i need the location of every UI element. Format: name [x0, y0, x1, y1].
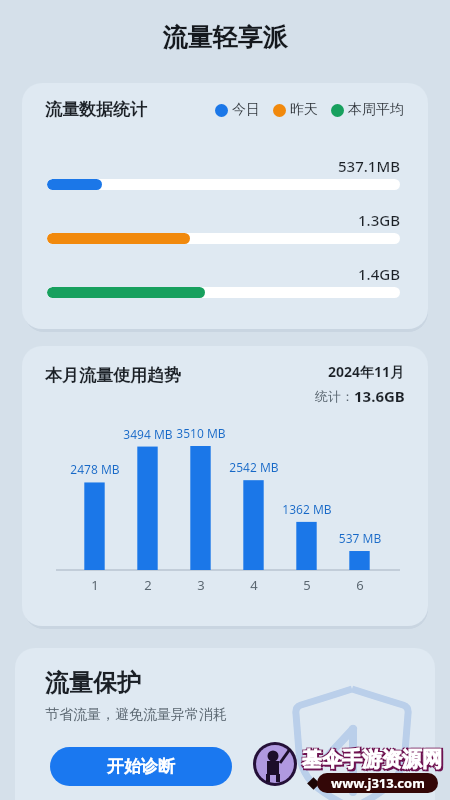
staticText: 4 [234, 576, 274, 594]
staticText: 基伞手游资源网 [304, 749, 444, 774]
staticText: 基伞手游资源网 [302, 747, 442, 772]
staticText: 2 [128, 576, 168, 594]
staticText: 537 MB [325, 530, 395, 546]
staticText: 2542 MB [219, 459, 289, 475]
staticText: 流量数据统计 [45, 99, 147, 120]
staticText: 开始诊断 [107, 756, 175, 777]
staticText: 5 [287, 576, 327, 594]
staticText: 1362 MB [272, 501, 342, 517]
staticText: 基伞手游资源网 [304, 749, 444, 774]
staticText: 3494 MB [113, 426, 183, 442]
staticText: 3510 MB [166, 425, 236, 441]
staticText: 6 [340, 576, 380, 594]
staticText: 今日 [232, 101, 260, 119]
staticText: 基伞手游资源网 [301, 749, 441, 774]
staticText: www.j313.com [331, 774, 425, 792]
staticText: 本月流量使用趋势 [45, 365, 181, 386]
staticText: 1.3GB [358, 210, 400, 230]
staticText: 2024年11月 [328, 362, 405, 381]
staticText: 1 [75, 576, 115, 594]
staticText: 3 [181, 576, 221, 594]
staticText: 13.6GB [354, 386, 405, 406]
staticText: 昨天 [290, 101, 318, 119]
staticText: 流量轻享派 [0, 22, 450, 53]
staticText: 本周平均 [348, 101, 404, 119]
staticText: 1.4GB [358, 264, 400, 284]
staticText: 537.1MB [338, 156, 400, 176]
staticText: 基伞手游资源网 [301, 746, 441, 771]
staticText: 节省流量，避免流量异常消耗 [45, 706, 227, 724]
staticText: 流量保护 [45, 668, 141, 698]
staticText: 统计： [315, 388, 354, 404]
button[interactable]: 开始诊断 [50, 747, 232, 786]
staticText: 基伞手游资源网 [304, 746, 444, 771]
staticText: 2478 MB [60, 461, 130, 477]
